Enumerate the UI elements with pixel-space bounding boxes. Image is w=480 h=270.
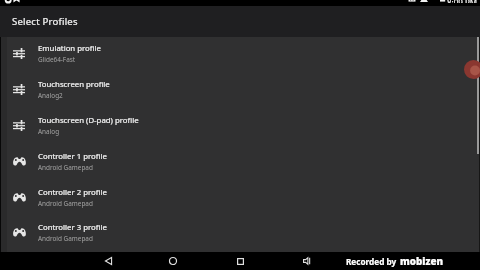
staticText: Touchscreen (D-pad) profile — [38, 115, 139, 126]
staticText: Android Gamepad — [38, 234, 93, 243]
button[interactable]: Controller 3 profile — [0, 215, 480, 250]
staticText: Glide64-Fast — [38, 55, 76, 64]
button[interactable]: Volume — [298, 252, 316, 270]
staticText: Controller 2 profile — [38, 187, 107, 198]
button[interactable]: Touchscreen (D-pad) profile — [0, 107, 480, 143]
staticText: Recorded by — [346, 256, 397, 267]
button[interactable]: Emulation profile — [0, 35, 480, 71]
button[interactable]: Recents — [231, 252, 249, 270]
button[interactable]: Home — [164, 252, 182, 270]
staticText: Select Profiles — [12, 15, 78, 28]
staticText: Emulation profile — [38, 43, 101, 54]
staticText: Controller 3 profile — [38, 222, 107, 233]
staticText: Android Gamepad — [38, 199, 93, 208]
staticText: mobizen — [400, 255, 444, 268]
button[interactable]: Controller 1 profile — [0, 143, 480, 179]
staticText: Analog2 — [38, 91, 63, 100]
staticText: Controller 1 profile — [38, 151, 107, 162]
staticText: Android Gamepad — [38, 163, 93, 172]
button[interactable]: Controller 2 profile — [0, 179, 480, 215]
staticText: Touchscreen profile — [38, 79, 110, 90]
staticText: 8:09 PM — [447, 0, 478, 3]
button[interactable]: Back — [99, 252, 117, 270]
staticText: Analog — [38, 127, 60, 136]
button[interactable]: Mobizen recorder — [464, 60, 480, 79]
button[interactable]: Touchscreen profile — [0, 71, 480, 107]
